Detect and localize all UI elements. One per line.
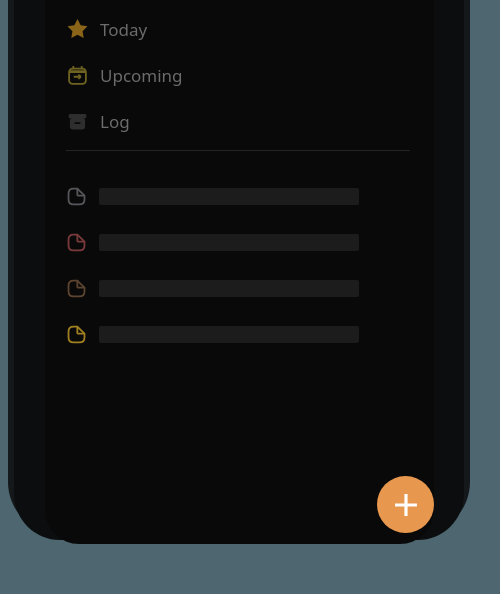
button[interactable]: Upcoming	[45, 52, 434, 98]
button[interactable]: Today	[45, 6, 434, 52]
button[interactable]: List item	[45, 311, 434, 357]
button[interactable]: List item	[45, 173, 434, 219]
button[interactable]: List item	[45, 265, 434, 311]
button[interactable]: List item	[45, 219, 434, 265]
staticText: Upcoming	[100, 64, 183, 87]
staticText: Log	[100, 110, 130, 133]
staticText: Today	[100, 18, 148, 41]
button[interactable]: Log	[45, 98, 434, 144]
button[interactable]: Add new item	[377, 476, 434, 533]
